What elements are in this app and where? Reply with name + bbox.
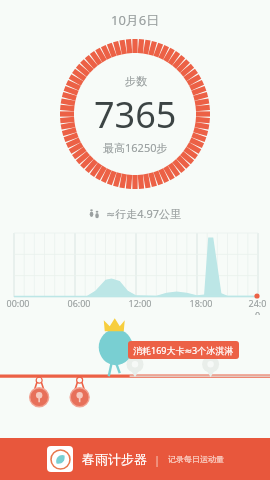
staticText: 24:00 bbox=[247, 297, 268, 315]
button[interactable]: App icon bbox=[0, 438, 270, 480]
button[interactable]: ≈行走4.97公里 bbox=[83, 204, 188, 223]
staticText: 00:00 bbox=[3, 297, 33, 309]
button[interactable] bbox=[0, 233, 270, 297]
staticText: 记录每日运动量 bbox=[168, 454, 224, 464]
staticText: 消耗169大卡≈3个冰淇淋 bbox=[133, 344, 234, 356]
staticText: 最高16250步 bbox=[103, 140, 168, 155]
staticText: | bbox=[154, 452, 161, 467]
button[interactable]: 步数 bbox=[59, 38, 211, 190]
staticText: 10月6日 bbox=[111, 11, 160, 29]
staticText: 步数 bbox=[125, 74, 147, 88]
other: App icon bbox=[47, 446, 73, 472]
staticText: ≈行走4.97公里 bbox=[106, 206, 182, 221]
staticText: 18:00 bbox=[186, 297, 216, 309]
staticText: 06:00 bbox=[64, 297, 94, 309]
button[interactable]: 消耗169大卡≈3个冰淇淋 bbox=[128, 341, 239, 359]
staticText: 春雨计步器 bbox=[82, 451, 147, 467]
staticText: 7365 bbox=[94, 90, 177, 139]
staticText: 12:00 bbox=[125, 297, 155, 309]
